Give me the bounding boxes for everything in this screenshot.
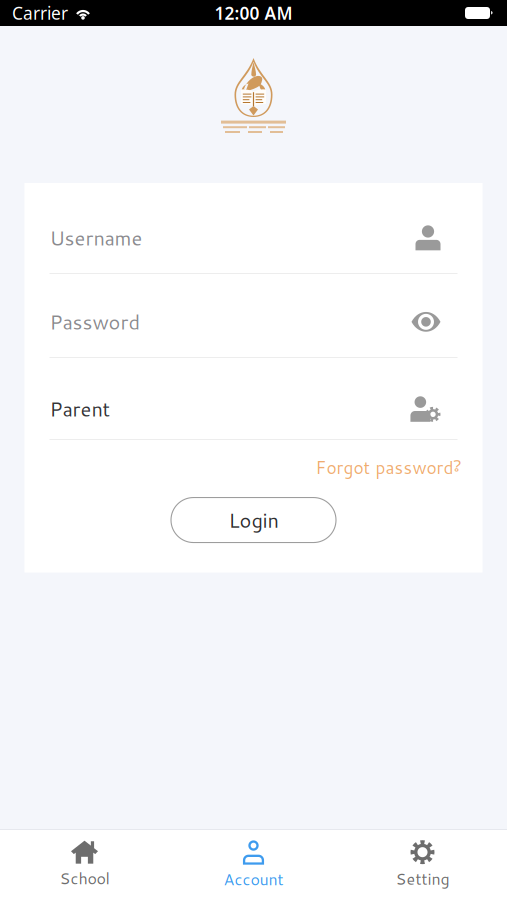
staticText: Setting bbox=[395, 867, 449, 890]
button[interactable]: School bbox=[0, 830, 169, 900]
button[interactable]: Setting bbox=[338, 830, 507, 900]
staticText: Carrier bbox=[12, 1, 68, 24]
staticText: School bbox=[59, 867, 109, 889]
staticText: Password bbox=[49, 308, 140, 336]
staticText: Account bbox=[223, 868, 283, 890]
staticText: Forgot password? bbox=[315, 455, 461, 479]
button[interactable]: Forgot password? bbox=[313, 449, 463, 485]
staticText: Login bbox=[228, 506, 278, 534]
staticText: Username bbox=[49, 224, 142, 252]
button[interactable]: Account bbox=[169, 830, 338, 900]
staticText: 12:00 AM bbox=[214, 1, 292, 24]
button[interactable]: Login bbox=[171, 497, 336, 542]
staticText: Parent bbox=[49, 395, 110, 423]
